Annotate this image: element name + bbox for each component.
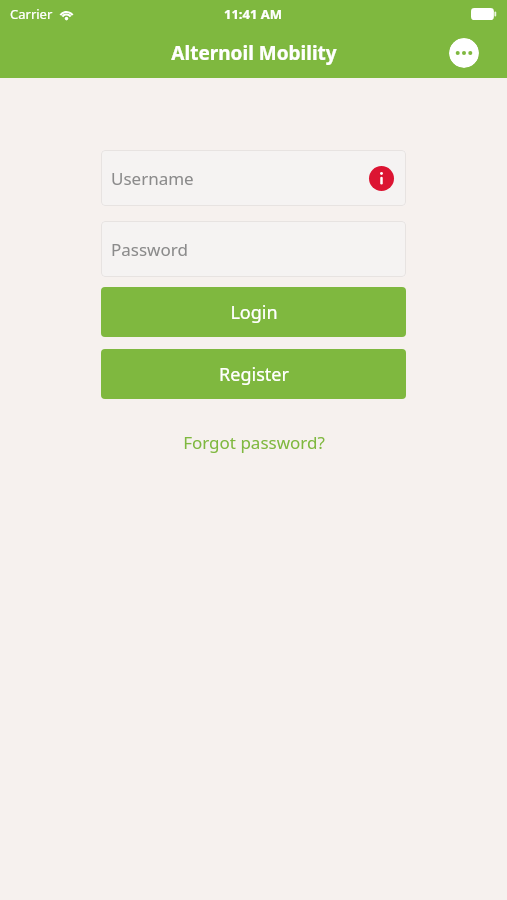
- staticText: Password: [111, 238, 188, 261]
- button[interactable]: More options: [449, 38, 479, 68]
- staticText: Carrier: [10, 5, 53, 23]
- button[interactable]: Forgot password?: [173, 427, 335, 458]
- staticText: Alternoil Mobility: [171, 40, 337, 66]
- button[interactable]: Register: [101, 349, 406, 399]
- staticText: Forgot password?: [183, 431, 325, 454]
- staticText: Username: [111, 167, 194, 190]
- button[interactable]: Login: [101, 287, 406, 337]
- staticText: Register: [219, 362, 289, 387]
- button[interactable]: Password: [101, 221, 406, 277]
- button[interactable]: Error: invalid username: [369, 166, 394, 191]
- staticText: Login: [230, 300, 278, 325]
- button[interactable]: Username: [101, 150, 406, 206]
- staticText: 11:41 AM: [224, 5, 283, 23]
